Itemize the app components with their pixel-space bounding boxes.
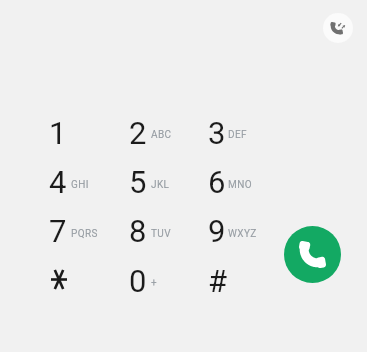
- button[interactable]: Key 9: [194, 208, 266, 252]
- staticText: DEF: [228, 129, 247, 141]
- staticText: 5: [129, 164, 147, 200]
- staticText: 1: [49, 115, 67, 151]
- staticText: PQRS: [71, 228, 98, 240]
- staticText: JKL: [151, 179, 170, 191]
- staticText: +: [151, 277, 158, 289]
- staticText: 9: [208, 213, 226, 249]
- button[interactable]: Key 4: [35, 159, 107, 203]
- staticText: MNO: [228, 179, 252, 191]
- staticText: #: [208, 263, 228, 299]
- button[interactable]: Key 5: [115, 159, 187, 203]
- staticText: 7: [49, 213, 67, 249]
- staticText: 3: [208, 115, 226, 151]
- button[interactable]: Key 2: [115, 110, 187, 154]
- button[interactable]: Key 7: [35, 208, 107, 252]
- staticText: TUV: [151, 228, 172, 240]
- button[interactable]: Key 8: [115, 208, 187, 252]
- button[interactable]: Call: [284, 226, 341, 283]
- staticText: 2: [129, 115, 147, 151]
- button[interactable]: Key 0: [115, 258, 187, 302]
- button[interactable]: Key *: [35, 258, 107, 302]
- button[interactable]: Key 3: [194, 110, 266, 154]
- staticText: 8: [129, 213, 147, 249]
- staticText: ABC: [151, 129, 172, 141]
- staticText: GHI: [71, 179, 89, 191]
- staticText: 0: [129, 263, 147, 299]
- button[interactable]: Swap calls: [323, 13, 353, 43]
- staticText: 4: [49, 164, 67, 200]
- button[interactable]: Key 6: [194, 159, 266, 203]
- staticText: WXYZ: [228, 228, 257, 240]
- button[interactable]: Key 1: [35, 110, 107, 154]
- button[interactable]: Key #: [194, 258, 266, 302]
- staticText: 6: [208, 164, 226, 200]
